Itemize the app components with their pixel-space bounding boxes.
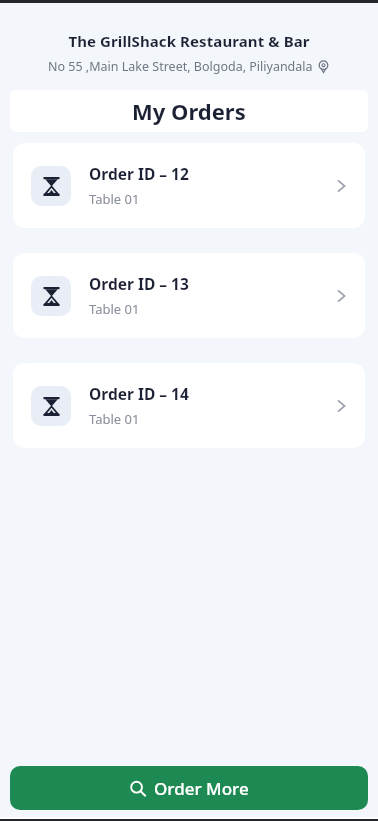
staticText: The GrillShack Restaurant & Bar (0, 31, 378, 51)
staticText: No 55 ,Main Lake Street, Bolgoda, Piliya… (48, 58, 313, 75)
staticText: Order ID – 12 (89, 163, 189, 184)
other: Location (317, 60, 330, 73)
staticText: Table 01 (89, 410, 140, 428)
other: Open order 12 (331, 176, 351, 196)
staticText: Table 01 (89, 190, 140, 208)
button[interactable]: Order More (10, 766, 368, 810)
other: Open order 14 (331, 396, 351, 416)
staticText: Order More (154, 777, 249, 800)
button[interactable]: Order ID – 12 (13, 143, 365, 228)
staticText: Order ID – 14 (89, 383, 189, 404)
staticText: Table 01 (89, 300, 140, 318)
staticText: My Orders (132, 96, 246, 126)
other: Open order 13 (331, 286, 351, 306)
button[interactable]: Order ID – 14 (13, 363, 365, 448)
staticText: Order ID – 13 (89, 273, 189, 294)
button[interactable]: Order ID – 13 (13, 253, 365, 338)
